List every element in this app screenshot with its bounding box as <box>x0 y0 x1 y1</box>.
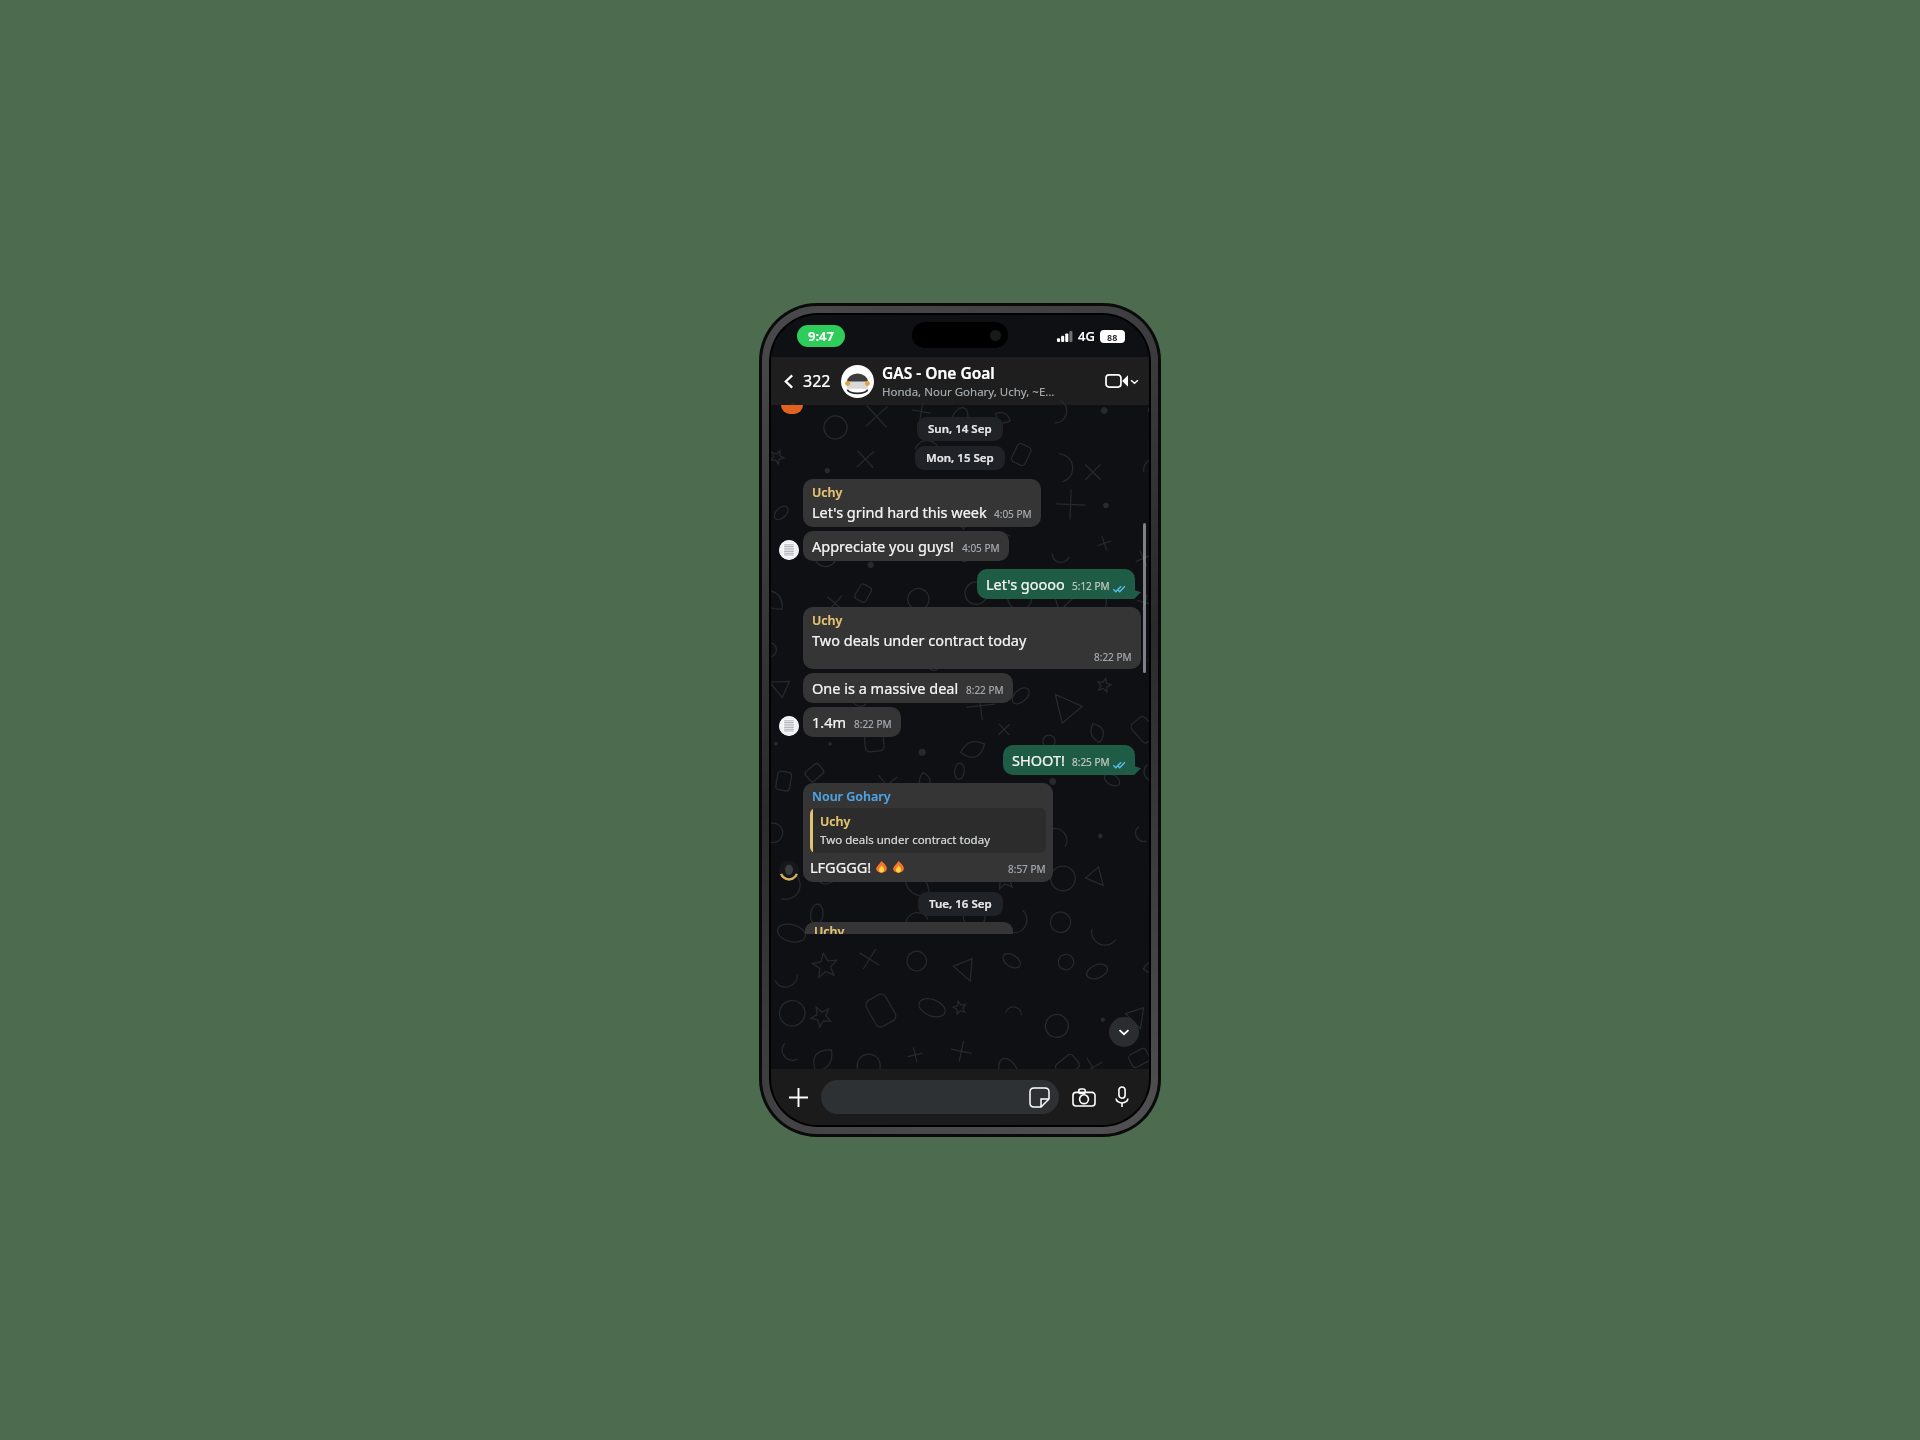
staticText: Mon, 15 Sep <box>926 450 994 466</box>
staticText: Uchy <box>814 923 845 934</box>
staticText: Tue, 16 Sep <box>929 896 992 912</box>
staticText: Uchy <box>812 484 843 501</box>
staticText: 8:22 PM <box>854 717 892 731</box>
button[interactable]: Let's goooo <box>977 569 1135 599</box>
staticText: 8:25 PM <box>1072 755 1110 769</box>
button[interactable]: Back, 322 unread <box>781 370 837 392</box>
staticText: Two deals under contract today <box>820 832 991 848</box>
button[interactable]: Camera <box>1069 1082 1099 1112</box>
staticText: 4:05 PM <box>994 507 1032 521</box>
button[interactable]: Nour Gohary <box>803 783 1053 882</box>
button[interactable]: SHOOT! <box>1003 745 1135 775</box>
staticText: 4G <box>1078 327 1095 345</box>
button[interactable]: Uchy <box>803 479 1041 527</box>
staticText: LFGGGG! <box>810 857 872 877</box>
other: Stickers <box>1030 1088 1049 1107</box>
staticText: Appreciate you guys! <box>812 536 955 556</box>
staticText: 1.4m <box>812 712 847 732</box>
staticText: SHOOT! <box>1012 750 1065 770</box>
button[interactable]: Appreciate you guys! <box>803 531 1009 561</box>
staticText: 4:05 PM <box>962 541 1000 555</box>
staticText: 88 <box>1107 331 1118 343</box>
staticText: Uchy <box>820 813 851 830</box>
button[interactable]: Uchy <box>803 607 1141 669</box>
button[interactable]: Scroll to bottom <box>1109 1017 1139 1047</box>
staticText: Two deals under contract today <box>812 630 1027 650</box>
staticText: Let's goooo <box>986 574 1065 594</box>
staticText: 322 <box>803 370 831 392</box>
staticText: Uchy <box>812 612 843 629</box>
staticText: Sun, 14 Sep <box>928 421 992 437</box>
staticText: 5:12 PM <box>1072 579 1110 593</box>
staticText: 9:47 <box>808 327 834 345</box>
staticText: Nour Gohary <box>812 788 891 805</box>
button[interactable]: Stickers <box>821 1080 1059 1114</box>
button[interactable]: One is a massive deal <box>803 673 1013 703</box>
staticText: 8:57 PM <box>1008 862 1046 876</box>
staticText: Let's grind hard this week <box>812 502 987 522</box>
staticText: 8:22 PM <box>1094 650 1132 664</box>
staticText: Honda, Nour Gohary, Uchy, ~E… <box>882 384 1055 400</box>
staticText: One is a massive deal <box>812 678 959 698</box>
staticText: GAS - One Goal <box>882 362 995 383</box>
button[interactable]: Attach <box>783 1082 813 1112</box>
button[interactable]: GAS - One Goal <box>841 362 1102 400</box>
button[interactable]: 1.4m <box>803 707 901 737</box>
button[interactable]: Video call <box>1102 373 1139 389</box>
staticText: 8:22 PM <box>966 683 1004 697</box>
button[interactable]: Voice message <box>1107 1082 1137 1112</box>
